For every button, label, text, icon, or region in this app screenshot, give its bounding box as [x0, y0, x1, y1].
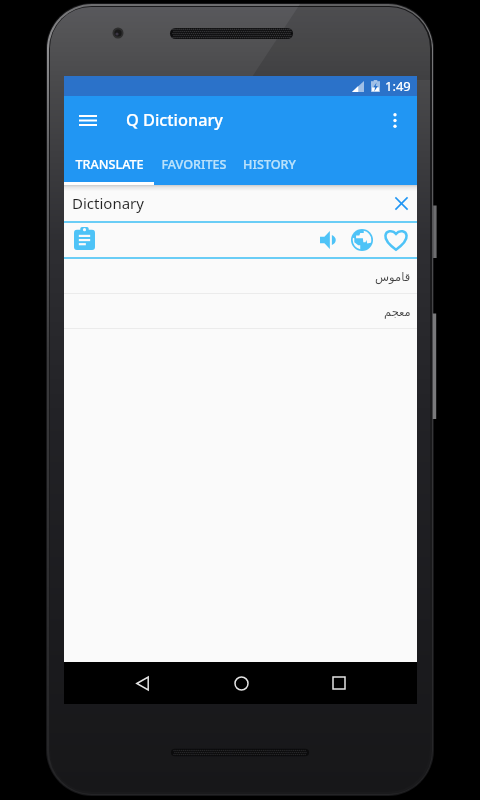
staticText: Dictionary [72, 193, 144, 213]
button[interactable]: Open navigation drawer [68, 100, 108, 140]
button[interactable]: FAVORITES [154, 144, 233, 185]
staticText: TRANSLATE [75, 156, 144, 173]
staticText: قاموس [375, 270, 411, 283]
button[interactable]: Recents [318, 662, 360, 704]
button[interactable]: قاموس [64, 259, 417, 294]
button[interactable]: HISTORY [233, 144, 306, 185]
staticText: 1:49 [385, 77, 411, 95]
staticText: HISTORY [243, 156, 296, 173]
button[interactable]: Back [121, 662, 163, 704]
button[interactable]: Home [220, 662, 262, 704]
button[interactable]: More options [377, 102, 413, 138]
button[interactable]: معجم [64, 294, 417, 329]
button[interactable]: Speak [313, 225, 343, 255]
button[interactable]: Clear [386, 188, 416, 218]
button[interactable]: Web search [347, 225, 377, 255]
button[interactable]: Copy to clipboard [69, 223, 99, 253]
staticText: معجم [384, 305, 411, 318]
staticText: FAVORITES [161, 156, 227, 173]
button[interactable]: TRANSLATE [64, 144, 154, 185]
staticText: Q Dictionary [126, 109, 223, 131]
button[interactable]: Add to favorites [381, 225, 411, 255]
